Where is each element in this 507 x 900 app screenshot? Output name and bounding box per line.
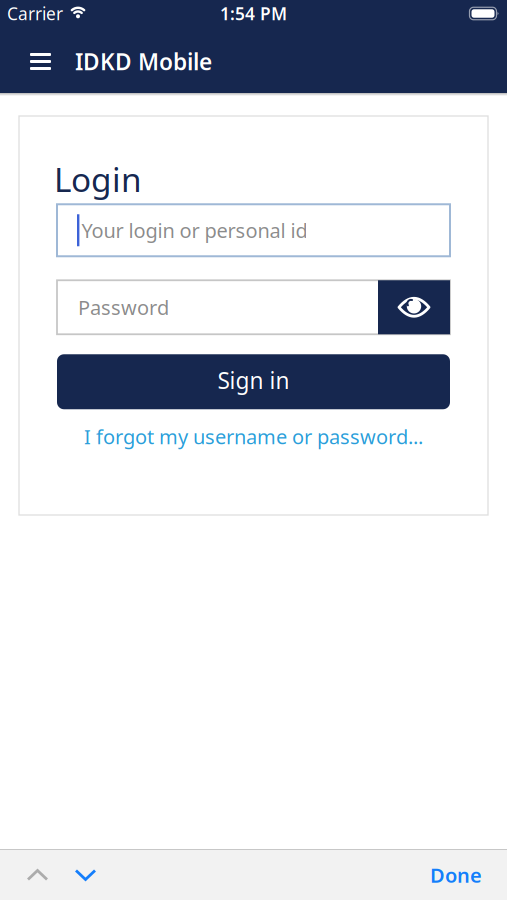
staticText: Password bbox=[78, 294, 169, 321]
staticText: I forgot my username or password... bbox=[84, 423, 423, 450]
staticText: Done bbox=[430, 862, 482, 888]
button[interactable]: Sign in bbox=[57, 354, 450, 409]
staticText: Sign in bbox=[217, 365, 289, 395]
staticText: 1:54 PM bbox=[220, 2, 287, 25]
button[interactable]: Next field bbox=[74, 867, 97, 882]
button[interactable]: Menu bbox=[30, 45, 51, 78]
staticText: Your login or personal id bbox=[81, 217, 307, 244]
button[interactable]: Show password bbox=[378, 280, 450, 334]
button[interactable]: Done bbox=[430, 862, 482, 888]
button[interactable]: Previous field bbox=[26, 867, 49, 882]
button[interactable]: I forgot my username or password... bbox=[57, 423, 450, 450]
staticText: IDKD Mobile bbox=[75, 46, 212, 76]
staticText: Carrier bbox=[7, 2, 63, 25]
staticText: Login bbox=[54, 157, 142, 201]
